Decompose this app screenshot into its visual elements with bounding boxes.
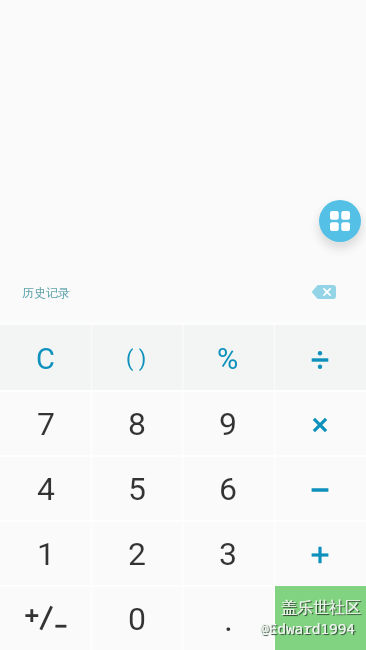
- button[interactable]: 5: [91, 455, 182, 520]
- other: Divide: [308, 346, 332, 370]
- staticText: 1: [37, 535, 55, 573]
- staticText: 6: [219, 470, 237, 508]
- button[interactable]: Backspace: [311, 285, 336, 299]
- staticText: 4: [37, 470, 55, 508]
- button[interactable]: 6: [182, 455, 274, 520]
- button[interactable]: 0: [91, 585, 182, 650]
- button[interactable]: .: [182, 585, 274, 650]
- button[interactable]: 4: [0, 455, 91, 520]
- button[interactable]: Minus: [274, 455, 366, 520]
- button[interactable]: Multiply: [274, 390, 366, 455]
- staticText: @Edward1994: [260, 619, 355, 639]
- staticText: 历史记录: [22, 285, 70, 300]
- button[interactable]: Plus: [274, 520, 366, 585]
- staticText: %: [217, 342, 239, 376]
- button[interactable]: 8: [91, 390, 182, 455]
- staticText: 8: [128, 405, 146, 443]
- button[interactable]: Apps: [319, 200, 361, 242]
- button[interactable]: 1: [0, 520, 91, 585]
- button[interactable]: 2: [91, 520, 182, 585]
- staticText: 2: [128, 535, 146, 573]
- button[interactable]: 9: [182, 390, 274, 455]
- other: Plus: [308, 541, 332, 565]
- staticText: C: [36, 342, 55, 376]
- button[interactable]: Equals: [274, 585, 366, 650]
- button[interactable]: Plus minus: [0, 585, 91, 650]
- other: Minus: [308, 476, 332, 500]
- staticText: 3: [219, 535, 237, 573]
- staticText: .: [224, 599, 233, 639]
- staticText: 0: [128, 600, 146, 638]
- other: Plus minus: [23, 603, 69, 633]
- button[interactable]: ( ): [91, 325, 182, 390]
- other: Multiply: [308, 411, 332, 435]
- button[interactable]: C: [0, 325, 91, 390]
- button[interactable]: 历史记录: [0, 279, 82, 306]
- button[interactable]: %: [182, 325, 274, 390]
- button[interactable]: 7: [0, 390, 91, 455]
- other: Equals: [308, 606, 332, 630]
- staticText: 7: [37, 405, 55, 443]
- button[interactable]: Divide: [274, 325, 366, 390]
- staticText: ( ): [126, 346, 147, 371]
- staticText: 盖乐世社区: [281, 598, 361, 618]
- staticText: 5: [128, 470, 146, 508]
- button[interactable]: 3: [182, 520, 274, 585]
- staticText: 9: [219, 405, 237, 443]
